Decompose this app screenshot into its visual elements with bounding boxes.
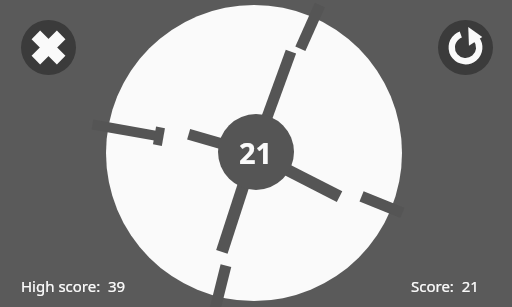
staticText: Score: 21 xyxy=(411,276,479,296)
staticText: 21 xyxy=(239,133,273,172)
button[interactable]: Close xyxy=(21,20,76,75)
button[interactable]: Restart xyxy=(438,20,493,75)
staticText: High score: 39 xyxy=(21,276,126,296)
